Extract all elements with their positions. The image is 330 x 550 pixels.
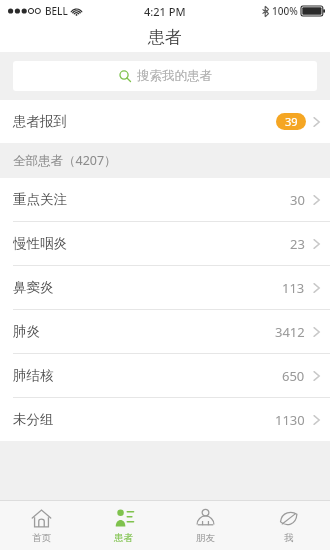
staticText: 患者报到 <box>13 113 67 130</box>
staticText: 1130 <box>275 411 305 429</box>
staticText: 首页 <box>32 532 51 544</box>
staticText: 3412 <box>275 323 305 341</box>
staticText: 慢性咽炎 <box>13 235 67 252</box>
button[interactable]: 鼻窦炎 <box>0 266 330 309</box>
button[interactable]: 首页 <box>0 501 82 550</box>
button[interactable]: 肺炎 <box>0 310 330 353</box>
staticText: 患者 <box>114 532 133 544</box>
button[interactable]: 未分组 <box>0 398 330 441</box>
button[interactable]: 患者 <box>82 501 164 550</box>
staticText: 肺炎 <box>13 323 40 340</box>
staticText: 全部患者（4207） <box>13 152 117 169</box>
staticText: 39 <box>285 114 298 129</box>
button[interactable]: 朋友 <box>164 501 247 550</box>
button[interactable]: 慢性咽炎 <box>0 222 330 265</box>
staticText: 未分组 <box>13 411 54 428</box>
button[interactable]: 搜索我的患者 <box>13 61 317 91</box>
staticText: 650 <box>282 367 305 385</box>
staticText: 113 <box>282 279 305 297</box>
staticText: 我 <box>284 532 294 544</box>
staticText: 搜索我的患者 <box>137 68 212 84</box>
button[interactable]: 我 <box>247 501 330 550</box>
staticText: 23 <box>290 235 305 253</box>
staticText: BELL <box>45 4 68 18</box>
button[interactable]: 患者报到 <box>0 100 330 143</box>
staticText: 100% <box>272 4 298 18</box>
staticText: 肺结核 <box>13 367 54 384</box>
button[interactable]: 重点关注 <box>0 178 330 221</box>
staticText: 30 <box>290 191 305 209</box>
staticText: 患者 <box>148 27 182 48</box>
staticText: 朋友 <box>196 532 215 544</box>
staticText: 重点关注 <box>13 191 67 208</box>
button[interactable]: 肺结核 <box>0 354 330 397</box>
staticText: 鼻窦炎 <box>13 279 54 296</box>
staticText: 4:21 PM <box>144 4 186 19</box>
